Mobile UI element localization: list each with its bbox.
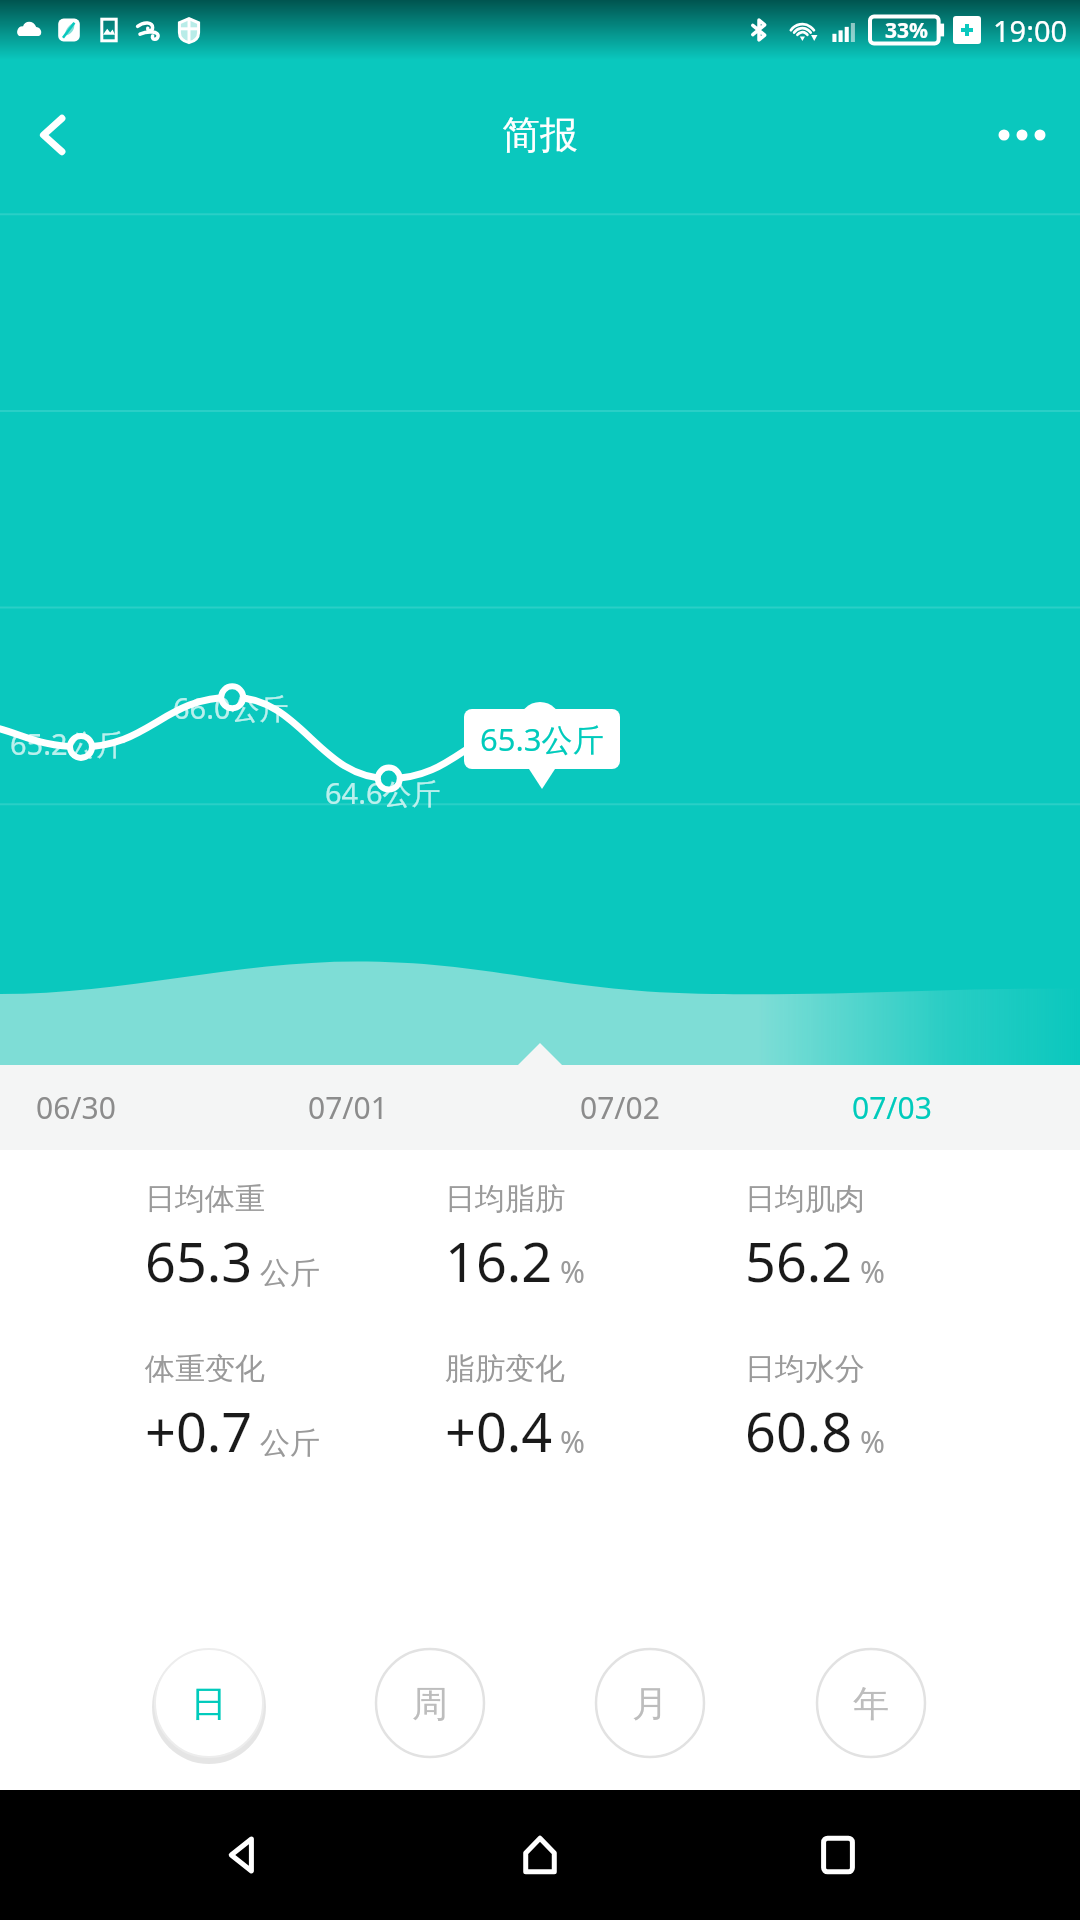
staticText: 日均体重 (145, 1180, 265, 1218)
button[interactable]: 返回 (18, 99, 90, 171)
button[interactable]: 返回 (188, 1800, 298, 1910)
staticText: 64.6公斤 (325, 773, 441, 813)
staticText: % (560, 1251, 585, 1292)
staticText: +0.4 (445, 1394, 553, 1468)
staticText: 日均水分 (745, 1350, 865, 1388)
staticText: 07/02 (580, 1087, 660, 1128)
staticText: 脂肪变化 (445, 1350, 565, 1388)
staticText: 60.8 (745, 1394, 853, 1468)
staticText: 65.2公斤 (10, 724, 126, 764)
staticText: 日 (191, 1681, 227, 1726)
staticText: 月 (632, 1681, 668, 1726)
staticText: 日均肌肉 (745, 1180, 865, 1218)
button[interactable]: 周 (371, 1644, 489, 1762)
staticText: 日均脂肪 (445, 1180, 565, 1218)
staticText: 16.2% (495, 1122, 583, 1164)
staticText: 公斤 (260, 1254, 320, 1292)
staticText: 06/30 (36, 1087, 116, 1128)
staticText: 体重变化 (145, 1350, 265, 1388)
staticText: 65.3 (145, 1224, 253, 1298)
staticText: +0.7 (145, 1394, 253, 1468)
staticText: % (860, 1251, 885, 1292)
staticText: 周 (412, 1681, 448, 1726)
button[interactable]: 年 (812, 1644, 930, 1762)
staticText: 66.0公斤 (173, 688, 289, 728)
staticText: 简报 (502, 111, 578, 159)
button[interactable]: 06/30 (28, 1077, 124, 1138)
staticText: 年 (853, 1681, 889, 1726)
button[interactable]: 07/01 (300, 1077, 396, 1138)
staticText: 65.3公斤 (480, 718, 604, 760)
staticText: 公斤 (260, 1424, 320, 1462)
button[interactable]: 月 (591, 1644, 709, 1762)
button[interactable]: 07/03 (844, 1077, 940, 1138)
button[interactable]: 主页 (485, 1800, 595, 1910)
staticText: % (860, 1421, 885, 1462)
staticText: 19:00 (993, 11, 1068, 50)
button[interactable]: 最近应用 (783, 1800, 893, 1910)
button[interactable]: 07/02 (572, 1077, 668, 1138)
staticText: % (560, 1421, 585, 1462)
button[interactable]: 更多选项 (982, 95, 1062, 175)
button[interactable]: 日 (150, 1644, 268, 1762)
staticText: 07/03 (852, 1087, 932, 1128)
staticText: 16.2 (445, 1224, 553, 1298)
staticText: 33% (885, 16, 928, 45)
staticText: 07/01 (308, 1087, 388, 1128)
staticText: 56.2 (745, 1224, 853, 1298)
